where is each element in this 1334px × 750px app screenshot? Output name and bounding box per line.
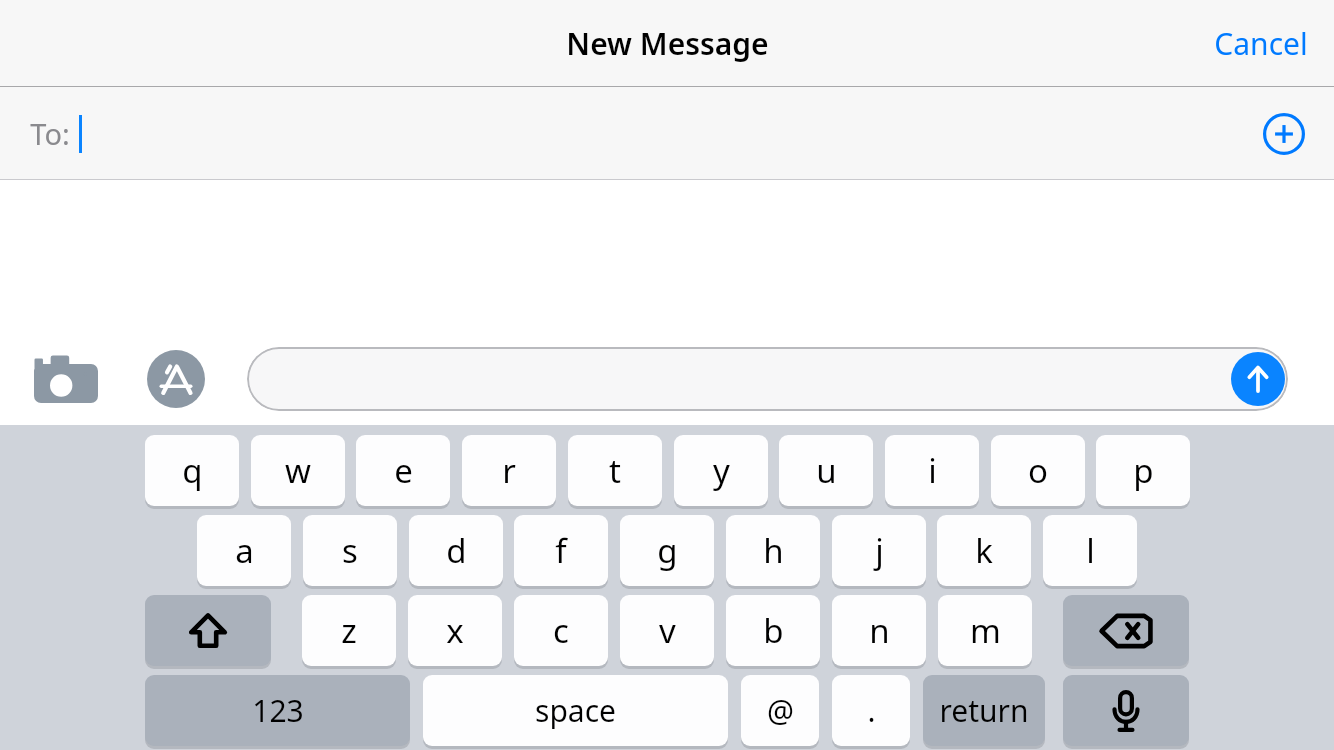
- button[interactable]: t: [568, 435, 662, 506]
- button[interactable]: w: [251, 435, 345, 506]
- staticText: s: [342, 528, 358, 573]
- button[interactable]: g: [620, 515, 714, 586]
- button[interactable]: Dictate: [1063, 675, 1189, 746]
- staticText: g: [657, 528, 678, 573]
- button[interactable]: Cancel: [1188, 5, 1334, 82]
- staticText: To:: [30, 114, 70, 153]
- button[interactable]: To:: [0, 87, 1334, 180]
- button[interactable]: [247, 347, 1288, 411]
- button[interactable]: Add contact: [1256, 106, 1312, 162]
- staticText: q: [182, 448, 203, 493]
- staticText: o: [1028, 448, 1048, 493]
- button[interactable]: b: [726, 595, 820, 666]
- button[interactable]: r: [462, 435, 556, 506]
- button[interactable]: k: [937, 515, 1031, 586]
- staticText: p: [1133, 448, 1154, 493]
- staticText: i: [928, 448, 937, 493]
- staticText: m: [970, 608, 1001, 653]
- staticText: New Message: [566, 23, 769, 64]
- staticText: Cancel: [1214, 23, 1308, 64]
- button[interactable]: n: [832, 595, 926, 666]
- button[interactable]: a: [197, 515, 291, 586]
- staticText: t: [609, 448, 621, 493]
- staticText: y: [713, 448, 730, 493]
- button[interactable]: s: [303, 515, 397, 586]
- button[interactable]: c: [514, 595, 608, 666]
- staticText: k: [975, 528, 993, 573]
- button[interactable]: z: [302, 595, 396, 666]
- button[interactable]: v: [620, 595, 714, 666]
- button[interactable]: p: [1096, 435, 1190, 506]
- staticText: h: [763, 528, 784, 573]
- button[interactable]: Apps: [138, 347, 214, 411]
- staticText: 123: [252, 690, 304, 731]
- staticText: f: [555, 528, 567, 573]
- staticText: a: [235, 528, 254, 573]
- button[interactable]: x: [408, 595, 502, 666]
- staticText: z: [341, 608, 357, 653]
- button[interactable]: Camera: [28, 344, 104, 414]
- staticText: .: [867, 690, 876, 731]
- button[interactable]: 123: [145, 675, 410, 746]
- button[interactable]: f: [514, 515, 608, 586]
- button[interactable]: y: [674, 435, 768, 506]
- button[interactable]: o: [991, 435, 1085, 506]
- button[interactable]: q: [145, 435, 239, 506]
- button[interactable]: i: [885, 435, 979, 506]
- button[interactable]: u: [779, 435, 873, 506]
- button[interactable]: space: [423, 675, 728, 746]
- staticText: x: [446, 608, 464, 653]
- button[interactable]: d: [409, 515, 503, 586]
- button[interactable]: l: [1043, 515, 1137, 586]
- staticText: b: [763, 608, 784, 653]
- button[interactable]: h: [726, 515, 820, 586]
- staticText: l: [1086, 528, 1095, 573]
- button[interactable]: Backspace: [1063, 595, 1189, 666]
- staticText: c: [553, 608, 569, 653]
- button[interactable]: return: [923, 675, 1045, 746]
- button[interactable]: Send: [1231, 352, 1285, 406]
- staticText: return: [939, 690, 1029, 731]
- staticText: u: [816, 448, 837, 493]
- staticText: r: [502, 448, 516, 493]
- button[interactable]: j: [832, 515, 926, 586]
- staticText: n: [869, 608, 890, 653]
- staticText: d: [446, 528, 467, 573]
- staticText: w: [285, 448, 311, 493]
- staticText: @: [767, 690, 794, 731]
- staticText: e: [394, 448, 413, 493]
- button[interactable]: e: [356, 435, 450, 506]
- button[interactable]: m: [938, 595, 1032, 666]
- button[interactable]: Shift: [145, 595, 271, 666]
- staticText: v: [659, 608, 676, 653]
- staticText: j: [875, 528, 884, 573]
- staticText: space: [535, 690, 616, 731]
- button[interactable]: .: [832, 675, 910, 746]
- button[interactable]: @: [741, 675, 819, 746]
